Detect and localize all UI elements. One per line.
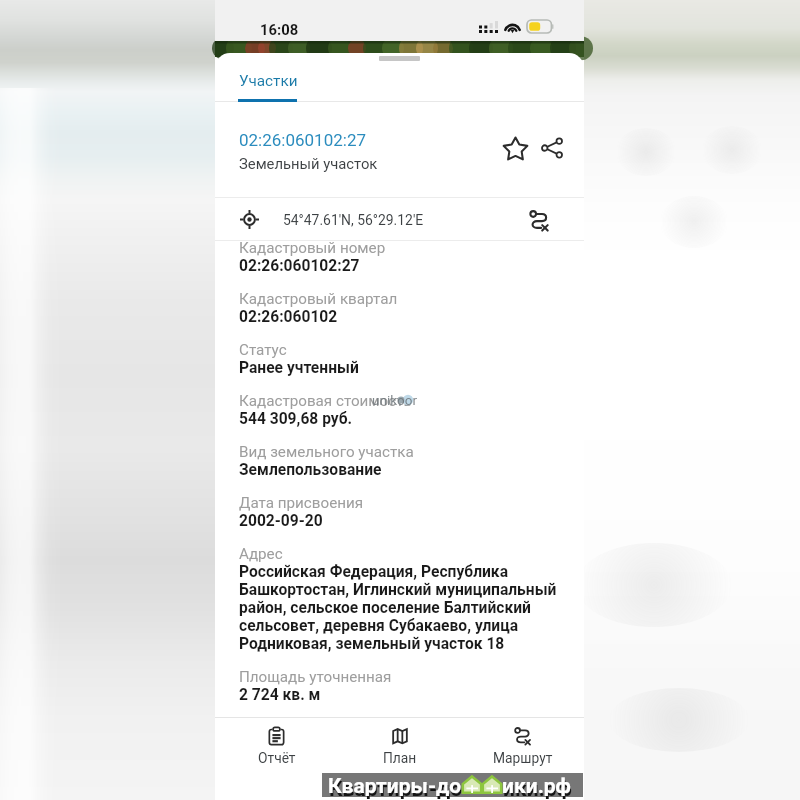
staticText: Кадастровая стоимость xyxy=(239,393,412,410)
staticText: Площадь уточненная xyxy=(239,669,392,686)
staticText: 54°47.61'N, 56°29.12'E xyxy=(283,211,424,228)
staticText: План xyxy=(383,749,417,766)
staticText: Квартиры-до xyxy=(328,772,462,796)
staticText: Адрес xyxy=(239,546,283,563)
staticText: Дата присвоения xyxy=(239,495,364,512)
staticText: 2002-09-20 xyxy=(239,512,323,530)
staticText: Кадастровый квартал xyxy=(239,291,398,308)
staticText: ики.рф xyxy=(502,772,571,796)
staticText: Российская Федерация, Республика Башкорт… xyxy=(239,563,559,653)
staticText: Кадастровый номер xyxy=(239,240,386,257)
staticText: Вид земельного участка xyxy=(239,444,414,461)
staticText: Землепользование xyxy=(239,461,382,479)
staticText: unikoor xyxy=(372,392,417,409)
staticText: 02:26:060102 xyxy=(239,308,338,326)
staticText: 16:08 xyxy=(260,20,299,39)
staticText: Земельный участок xyxy=(239,154,378,173)
staticText: ики.рф xyxy=(503,775,572,799)
button[interactable]: Участки xyxy=(238,66,297,102)
staticText: 2 724 кв. м xyxy=(239,686,321,704)
staticText: Отчёт xyxy=(258,749,296,766)
staticText: Участки xyxy=(239,71,298,90)
staticText: 544 309,68 руб. xyxy=(239,410,353,428)
staticText: Квартиры-до xyxy=(329,775,463,799)
staticText: Ранее учтенный xyxy=(239,359,359,377)
staticText: 02:26:060102:27 xyxy=(239,129,367,150)
staticText: 02:26:060102:27 xyxy=(239,257,360,275)
staticText: Статус xyxy=(239,342,287,359)
button[interactable]: Clear route xyxy=(522,203,556,237)
button[interactable]: Share xyxy=(534,130,570,166)
button[interactable]: Отчёт xyxy=(215,718,338,800)
button[interactable]: Маршрут xyxy=(461,718,584,800)
button[interactable]: План xyxy=(338,718,461,800)
button[interactable]: Add to favorites xyxy=(497,130,533,166)
staticText: Маршрут xyxy=(493,749,553,766)
